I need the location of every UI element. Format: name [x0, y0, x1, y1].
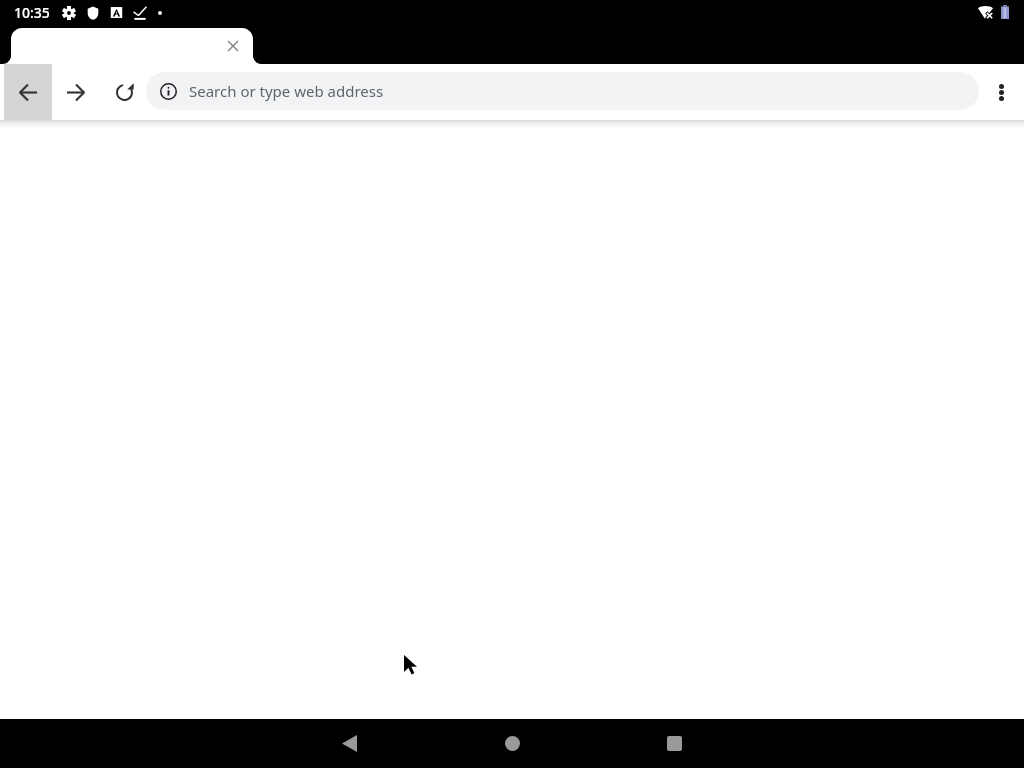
- button[interactable]: Recent apps: [650, 719, 698, 768]
- button[interactable]: Home: [488, 719, 536, 768]
- button[interactable]: Close tab: [221, 34, 245, 58]
- button[interactable]: Back: [325, 719, 373, 768]
- button[interactable]: Reload: [100, 64, 148, 120]
- button[interactable]: Search or type web address: [146, 72, 979, 110]
- staticText: Search or type web address: [189, 81, 384, 101]
- staticText: 10:35: [14, 3, 50, 22]
- button[interactable]: More options: [979, 64, 1023, 120]
- button[interactable]: New tab: [11, 28, 221, 64]
- button[interactable]: Forward: [52, 64, 100, 120]
- button[interactable]: Back: [4, 64, 52, 120]
